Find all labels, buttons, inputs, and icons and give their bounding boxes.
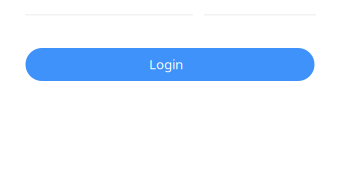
staticText: Login <box>149 55 183 73</box>
button[interactable]: Login <box>25 48 314 81</box>
